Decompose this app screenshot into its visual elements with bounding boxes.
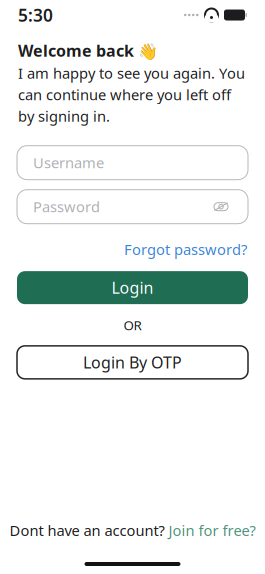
staticText: 5:30: [18, 3, 53, 26]
staticText: I am happy to see you again. You can con…: [18, 63, 245, 126]
staticText: Dont have an account?: [9, 520, 164, 540]
staticText: Password: [33, 197, 100, 216]
staticText: Login By OTP: [83, 352, 182, 373]
button[interactable]: Login By OTP: [17, 346, 248, 379]
staticText: OR: [123, 316, 141, 334]
staticText: Welcome back 👋: [18, 40, 158, 61]
staticText: Forgot password?: [124, 240, 247, 259]
button[interactable]: Login: [17, 271, 248, 304]
button[interactable]: Join for free?: [168, 520, 255, 540]
staticText: Username: [33, 153, 104, 172]
button[interactable]: Forgot password?: [124, 236, 247, 263]
staticText: Login: [111, 277, 153, 298]
staticText: Join for free?: [168, 520, 255, 540]
button[interactable]: Show password: [210, 196, 232, 218]
